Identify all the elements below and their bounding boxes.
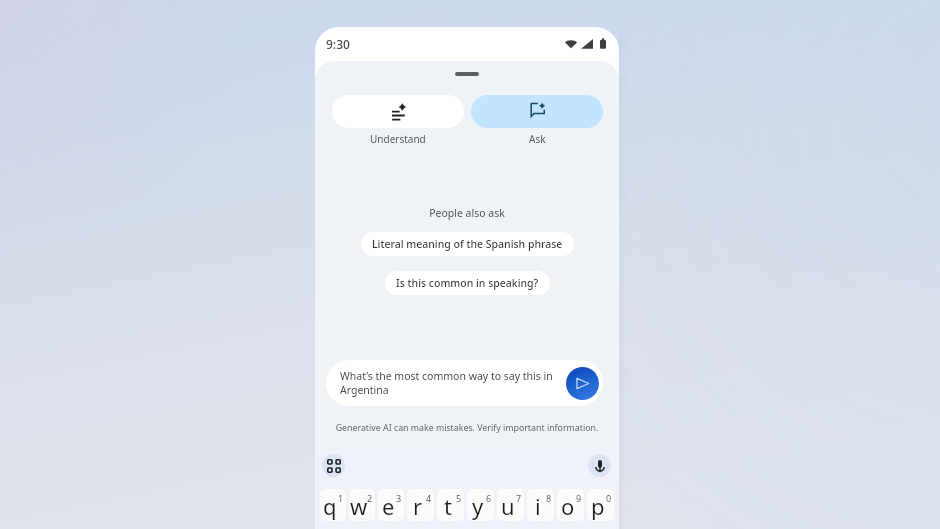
staticText: Understand (370, 132, 426, 146)
staticText: 6 (486, 492, 492, 504)
staticText: e (382, 491, 395, 521)
staticText: 4 (426, 492, 432, 504)
button[interactable] (471, 95, 603, 128)
staticText: People also ask (315, 206, 619, 220)
button[interactable] (332, 95, 464, 128)
staticText: q (323, 491, 337, 521)
staticText: w (350, 491, 368, 521)
staticText: 5 (456, 492, 462, 504)
button[interactable]: Is this common in speaking? (385, 271, 550, 295)
staticText: 2 (367, 492, 373, 504)
button[interactable]: Send (566, 367, 599, 400)
staticText: Ask (529, 132, 546, 146)
staticText: 9:30 (326, 36, 350, 52)
button[interactable]: t (437, 489, 464, 521)
staticText: 7 (516, 492, 522, 504)
staticText: r (413, 491, 423, 521)
button[interactable]: Keyboard layout (322, 454, 345, 477)
staticText: What’s the most common way to say this i… (340, 369, 558, 397)
staticText: 1 (338, 492, 344, 504)
staticText: p (591, 491, 605, 521)
button[interactable]: y (467, 489, 494, 521)
button[interactable]: Literal meaning of the Spanish phrase (361, 232, 574, 256)
staticText: Generative AI can make mistakes. Verify … (315, 422, 619, 434)
staticText: o (561, 491, 575, 521)
button[interactable]: p (587, 489, 614, 521)
button[interactable]: r (407, 489, 434, 521)
staticText: 0 (606, 492, 612, 504)
staticText: Is this common in speaking? (396, 276, 539, 290)
staticText: u (501, 491, 515, 521)
staticText: Literal meaning of the Spanish phrase (372, 237, 563, 251)
staticText: 8 (546, 492, 552, 504)
staticText: t (444, 491, 452, 521)
button[interactable]: o (557, 489, 584, 521)
button[interactable]: Voice input (588, 454, 611, 477)
button[interactable]: i (527, 489, 554, 521)
staticText: 3 (396, 492, 402, 504)
button[interactable]: e (378, 489, 404, 521)
staticText: 9 (576, 492, 582, 504)
staticText: y (472, 491, 484, 521)
button[interactable]: q (320, 489, 346, 521)
button[interactable]: u (497, 489, 524, 521)
button[interactable]: w (349, 489, 375, 521)
button[interactable]: What’s the most common way to say this i… (326, 360, 603, 406)
staticText: i (535, 491, 541, 521)
